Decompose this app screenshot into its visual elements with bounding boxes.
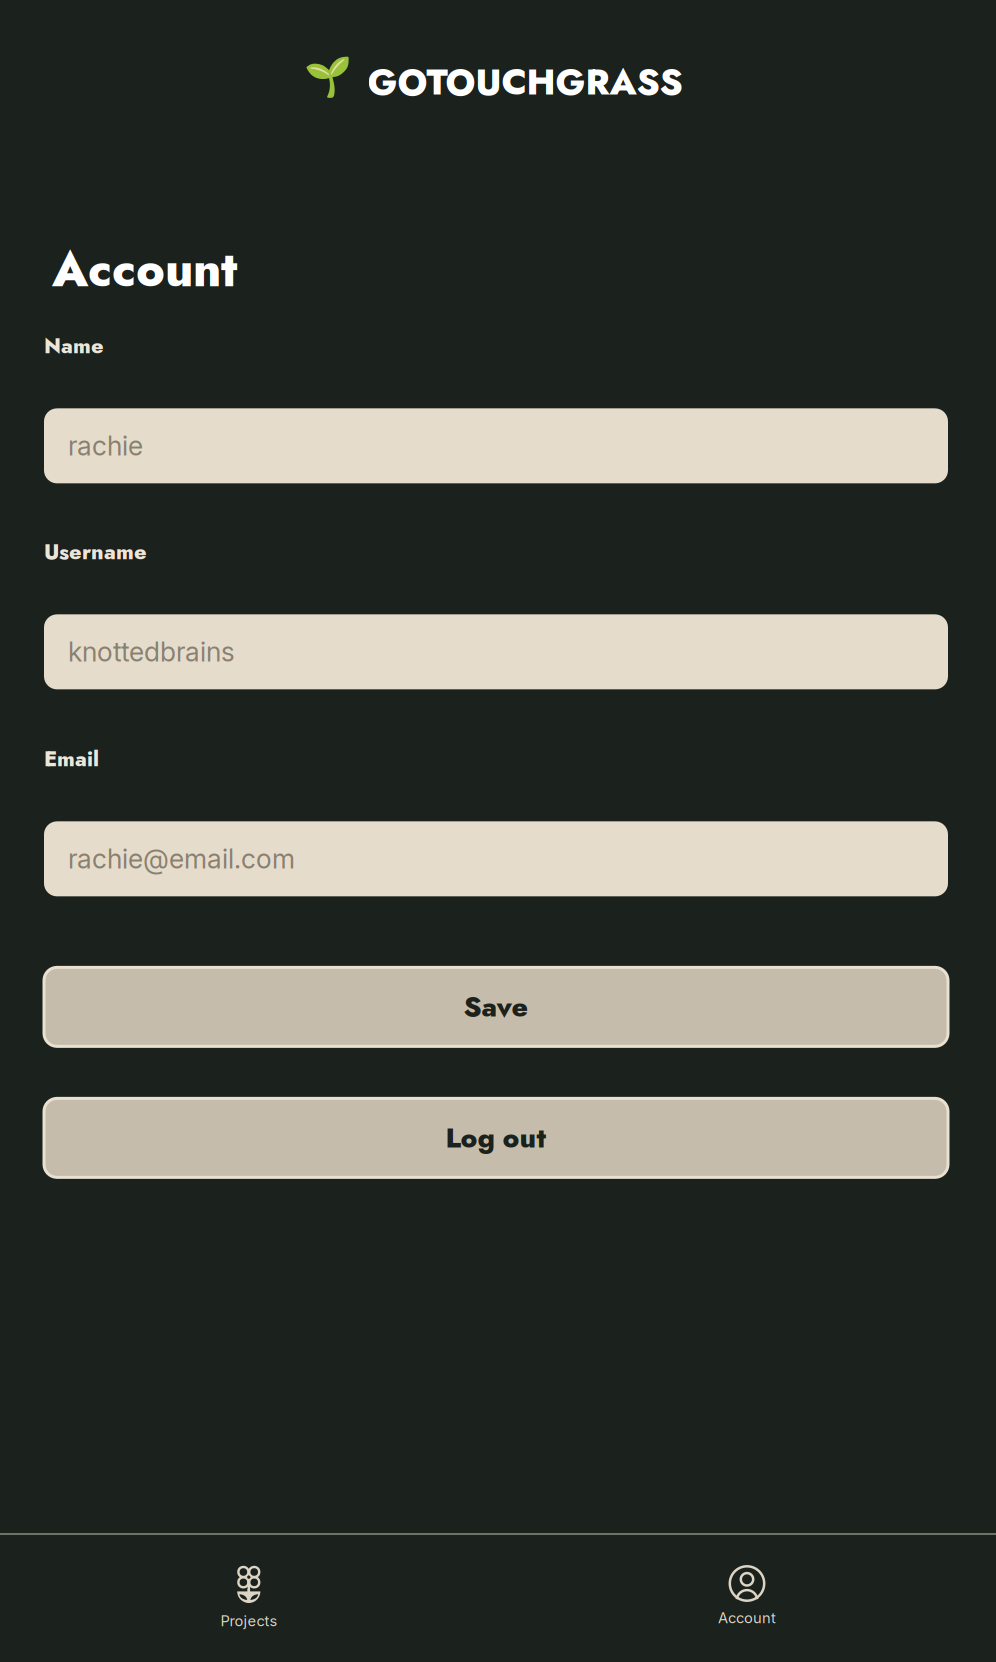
staticText: Email bbox=[44, 743, 99, 774]
button[interactable]: Projects bbox=[0, 1535, 498, 1662]
staticText: rachie bbox=[68, 430, 143, 462]
staticText: rachie@email.com bbox=[68, 843, 295, 875]
staticText: Account bbox=[52, 235, 237, 304]
staticText: Account bbox=[718, 1609, 776, 1627]
staticText: 🌱 bbox=[303, 54, 351, 100]
button[interactable]: knottedbrains bbox=[44, 614, 948, 689]
button[interactable]: Save bbox=[44, 967, 948, 1046]
staticText: GOTOUCHGRASS bbox=[367, 56, 682, 108]
staticText: Save bbox=[463, 987, 528, 1027]
staticText: Name bbox=[44, 330, 104, 361]
button[interactable]: rachie bbox=[44, 408, 948, 483]
staticText: Log out bbox=[445, 1118, 546, 1158]
button[interactable]: Account bbox=[498, 1535, 996, 1662]
button[interactable]: rachie@email.com bbox=[44, 821, 948, 896]
staticText: Projects bbox=[220, 1612, 277, 1630]
button[interactable]: Log out bbox=[44, 1098, 948, 1177]
staticText: Username bbox=[44, 536, 147, 567]
staticText: knottedbrains bbox=[68, 636, 235, 668]
